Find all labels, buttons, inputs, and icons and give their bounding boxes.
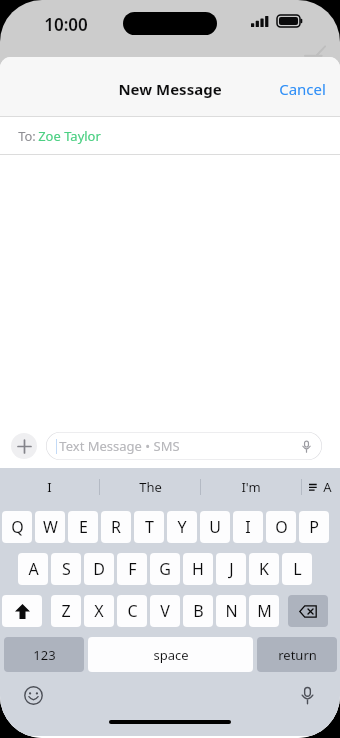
button[interactable]: L <box>282 553 312 585</box>
staticText: K <box>259 558 269 580</box>
staticText: G <box>159 558 171 580</box>
button[interactable]: P <box>299 511 329 543</box>
staticText: V <box>160 600 170 622</box>
staticText: M <box>257 600 272 622</box>
button[interactable]: To: <box>0 117 340 154</box>
staticText: O <box>275 516 288 538</box>
staticText: A <box>323 478 332 496</box>
button[interactable]: B <box>183 595 213 627</box>
button[interactable]: Add attachment <box>11 433 37 459</box>
staticText: U <box>209 516 221 538</box>
staticText: B <box>193 600 204 622</box>
staticText: R <box>111 516 121 538</box>
staticText: J <box>229 558 234 580</box>
button[interactable]: G <box>150 553 180 585</box>
staticText: Cancel <box>279 79 326 99</box>
staticText: Text Message • SMS <box>59 437 180 455</box>
staticText: F <box>128 558 137 580</box>
button[interactable]: Text formatting <box>302 468 340 506</box>
button[interactable]: Audio message <box>298 438 314 454</box>
button[interactable]: J <box>216 553 246 585</box>
button[interactable]: O <box>266 511 296 543</box>
staticText: Zoe Taylor <box>38 127 101 145</box>
staticText: E <box>79 516 88 538</box>
button[interactable]: H <box>183 553 213 585</box>
button[interactable]: Emoji <box>20 682 46 708</box>
staticText: New Message <box>118 79 222 99</box>
button[interactable]: Text Message • SMS <box>46 432 322 460</box>
button[interactable]: U <box>200 511 230 543</box>
staticText: W <box>43 516 58 538</box>
staticText: 123 <box>33 646 56 664</box>
staticText: A <box>28 558 39 580</box>
button[interactable]: Dictation <box>294 682 320 708</box>
button[interactable]: D <box>84 553 114 585</box>
staticText: space <box>153 646 189 664</box>
button[interactable]: I <box>0 468 99 506</box>
staticText: H <box>192 558 204 580</box>
button[interactable]: Cancel <box>265 71 340 107</box>
button[interactable]: F <box>117 553 147 585</box>
staticText: Z <box>61 600 71 622</box>
button[interactable]: space <box>88 637 253 672</box>
button[interactable]: R <box>101 511 131 543</box>
staticText: T <box>145 516 154 538</box>
staticText: P <box>309 516 319 538</box>
button[interactable]: W <box>35 511 65 543</box>
button[interactable]: S <box>51 553 81 585</box>
staticText: The <box>139 478 162 496</box>
button[interactable]: Backspace <box>288 595 328 627</box>
staticText: Y <box>177 516 187 538</box>
staticText: 10:00 <box>44 13 88 36</box>
staticText: X <box>94 600 104 622</box>
button[interactable]: The <box>100 468 200 506</box>
button[interactable]: I'm <box>201 468 301 506</box>
button[interactable]: E <box>68 511 98 543</box>
button[interactable]: return <box>257 637 337 672</box>
button[interactable]: C <box>117 595 147 627</box>
staticText: return <box>278 646 317 664</box>
button[interactable]: Y <box>167 511 197 543</box>
staticText: N <box>225 600 238 622</box>
staticText: C <box>127 600 138 622</box>
button[interactable]: M <box>249 595 279 627</box>
button[interactable]: V <box>150 595 180 627</box>
staticText: Q <box>11 516 24 538</box>
button[interactable]: 123 <box>4 637 84 672</box>
button[interactable]: A <box>18 553 48 585</box>
staticText: L <box>293 558 302 580</box>
button[interactable]: Z <box>51 595 81 627</box>
staticText: I <box>245 516 251 538</box>
staticText: D <box>93 558 105 580</box>
staticText: I'm <box>241 478 261 496</box>
button[interactable]: T <box>134 511 164 543</box>
button[interactable]: Shift <box>2 595 42 627</box>
button[interactable]: X <box>84 595 114 627</box>
button[interactable]: Q <box>2 511 32 543</box>
staticText: I <box>47 478 52 496</box>
button[interactable]: K <box>249 553 279 585</box>
button[interactable]: I <box>233 511 263 543</box>
staticText: S <box>62 558 71 580</box>
button[interactable]: N <box>216 595 246 627</box>
staticText: To: <box>16 127 38 145</box>
